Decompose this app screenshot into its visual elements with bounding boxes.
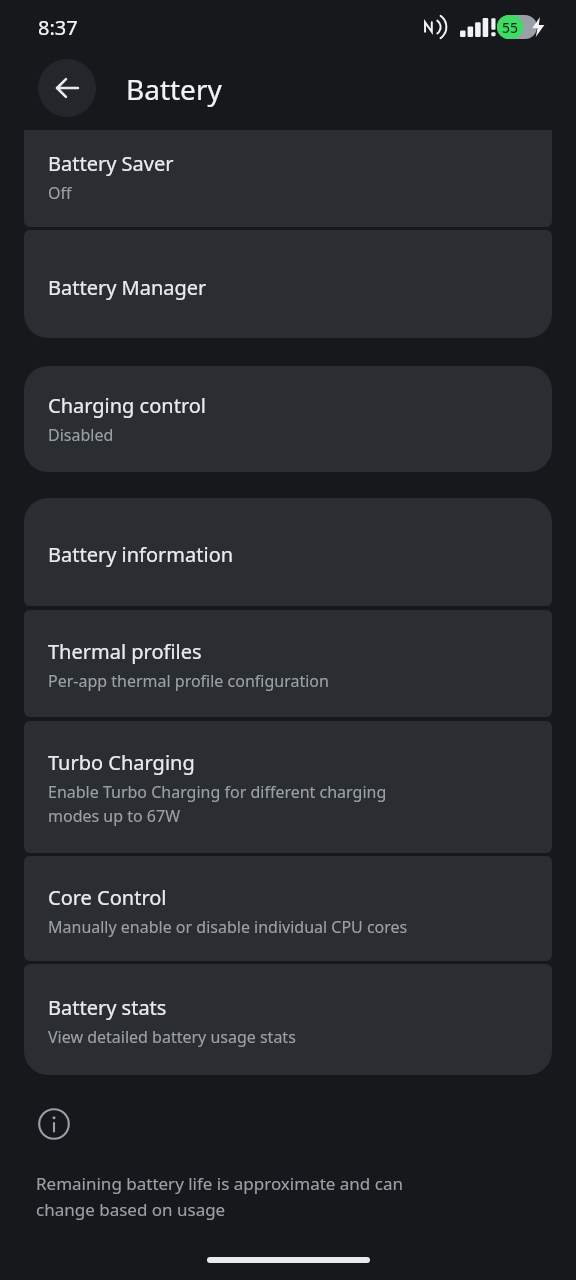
staticText: Enable Turbo Charging for different char… [48,781,387,827]
staticText: Disabled [48,424,114,446]
staticText: Turbo Charging [48,749,195,776]
staticText: Battery Manager [48,274,207,301]
button[interactable]: Turbo Charging [24,721,552,853]
staticText: Per-app thermal profile configuration [48,670,329,692]
staticText: View detailed battery usage stats [48,1026,296,1048]
button[interactable]: Battery Manager [24,230,552,338]
staticText: Battery Saver [48,150,174,177]
staticText: Off [48,182,72,204]
button[interactable]: Battery stats [24,964,552,1075]
button[interactable]: Back [38,59,96,117]
staticText: Charging control [48,392,206,419]
staticText: Remaining battery life is approximate an… [36,1172,403,1221]
staticText: Battery [126,70,222,108]
button[interactable]: Charging control [24,366,552,472]
staticText: Thermal profiles [48,638,202,665]
staticText: 55 [502,18,519,37]
button[interactable]: Battery information [24,498,552,606]
button[interactable]: Core Control [24,856,552,961]
staticText: Core Control [48,884,167,911]
staticText: Battery stats [48,994,167,1021]
button[interactable]: Battery Saver [24,130,552,227]
staticText: Battery information [48,541,234,568]
button[interactable]: Thermal profiles [24,610,552,717]
staticText: 8:37 [38,14,78,41]
staticText: Manually enable or disable individual CP… [48,916,408,938]
